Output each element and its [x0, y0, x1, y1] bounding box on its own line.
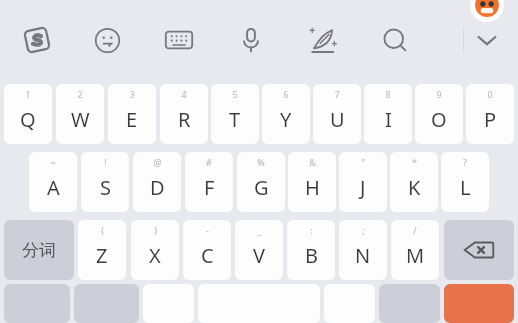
- button[interactable]: ): [131, 220, 179, 280]
- button[interactable]: @: [133, 152, 181, 212]
- staticText: O: [431, 106, 447, 133]
- button[interactable]: 4: [160, 84, 208, 144]
- staticText: _: [257, 224, 261, 236]
- button[interactable]: -: [183, 220, 231, 280]
- staticText: ;: [362, 224, 365, 236]
- button[interactable]: !: [81, 152, 129, 212]
- staticText: H: [305, 174, 320, 201]
- button[interactable]: (: [78, 220, 126, 280]
- staticText: R: [178, 106, 191, 133]
- staticText: ?: [463, 156, 467, 168]
- button[interactable]: ?: [441, 152, 489, 212]
- staticText: 1: [25, 88, 31, 100]
- button[interactable]: Handwriting: [300, 17, 346, 63]
- button[interactable]: #: [185, 152, 233, 212]
- staticText: ~: [50, 156, 56, 168]
- staticText: V: [253, 242, 265, 269]
- button[interactable]: 2: [56, 84, 104, 144]
- staticText: S: [100, 174, 111, 201]
- staticText: !: [104, 156, 107, 168]
- staticText: E: [126, 106, 138, 133]
- staticText: 3: [129, 88, 135, 100]
- button[interactable]: :: [287, 220, 335, 280]
- staticText: X: [149, 242, 161, 269]
- staticText: 0: [487, 88, 493, 100]
- staticText: ": [361, 156, 365, 168]
- staticText: G: [254, 174, 269, 201]
- staticText: Y: [280, 106, 292, 133]
- staticText: #: [206, 156, 212, 168]
- button[interactable]: 9: [415, 84, 463, 144]
- staticText: J: [360, 174, 366, 201]
- staticText: K: [408, 174, 421, 201]
- staticText: M: [406, 242, 425, 269]
- button[interactable]: Backspace: [444, 220, 514, 280]
- staticText: W: [71, 106, 90, 133]
- button[interactable]: Notification badge: [470, 0, 504, 22]
- staticText: 4: [181, 88, 187, 100]
- staticText: C: [201, 242, 214, 269]
- staticText: F: [204, 174, 215, 201]
- staticText: -: [206, 224, 209, 236]
- staticText: :: [310, 224, 313, 236]
- staticText: &: [309, 156, 316, 168]
- staticText: 9: [436, 88, 442, 100]
- staticText: 分词: [22, 240, 56, 261]
- button[interactable]: Emoji: [84, 17, 130, 63]
- staticText: N: [355, 242, 371, 269]
- button[interactable]: Enter: [444, 284, 514, 323]
- staticText: ): [154, 224, 157, 236]
- staticText: (: [101, 224, 104, 236]
- button[interactable]: _: [235, 220, 283, 280]
- staticText: P: [484, 106, 497, 133]
- button[interactable]: 6: [262, 84, 310, 144]
- button[interactable]: 0: [466, 84, 514, 144]
- button[interactable]: Voice input: [228, 17, 274, 63]
- staticText: %: [257, 156, 265, 168]
- staticText: 8: [385, 88, 391, 100]
- button[interactable]: ~: [29, 152, 77, 212]
- staticText: *: [412, 156, 417, 168]
- staticText: 5: [232, 88, 238, 100]
- button[interactable]: 7: [313, 84, 361, 144]
- staticText: 7: [334, 88, 340, 100]
- staticText: 6: [283, 88, 289, 100]
- button[interactable]: &: [288, 152, 336, 212]
- button[interactable]: 3: [108, 84, 156, 144]
- button[interactable]: ;: [339, 220, 387, 280]
- button[interactable]: ": [339, 152, 387, 212]
- staticText: B: [305, 242, 318, 269]
- button[interactable]: 5: [211, 84, 259, 144]
- button[interactable]: 1: [4, 84, 52, 144]
- staticText: L: [460, 174, 471, 201]
- staticText: Q: [20, 106, 36, 133]
- button[interactable]: Search: [372, 17, 418, 63]
- button[interactable]: Sogou input method: [14, 17, 60, 63]
- button[interactable]: 8: [364, 84, 412, 144]
- staticText: U: [330, 106, 345, 133]
- button[interactable]: Hide keyboard: [464, 17, 510, 63]
- staticText: T: [229, 106, 241, 133]
- staticText: D: [150, 174, 165, 201]
- button[interactable]: 分词: [4, 220, 74, 280]
- staticText: I: [385, 106, 392, 133]
- button[interactable]: /: [391, 220, 439, 280]
- button[interactable]: *: [390, 152, 438, 212]
- button[interactable]: Keyboard layout: [156, 17, 202, 63]
- staticText: 2: [77, 88, 83, 100]
- staticText: @: [153, 156, 162, 168]
- staticText: Z: [96, 242, 108, 269]
- staticText: A: [47, 174, 60, 201]
- button[interactable]: %: [237, 152, 285, 212]
- staticText: /: [413, 224, 417, 236]
